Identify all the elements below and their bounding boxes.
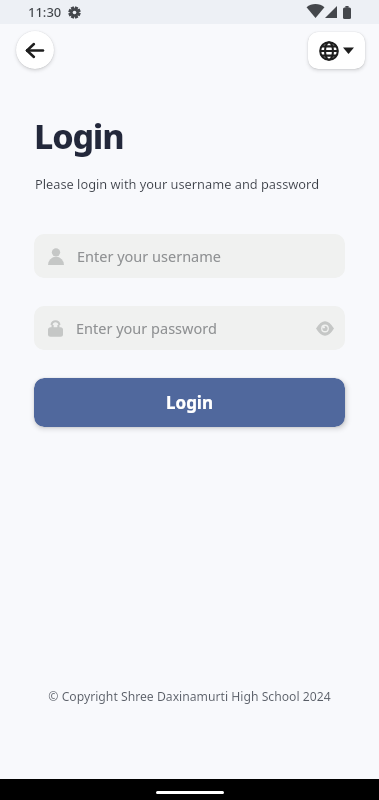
staticText: © Copyright Shree Daxinamurti High Schoo…: [0, 688, 379, 705]
staticText: Login: [34, 113, 124, 159]
button[interactable]: [16, 31, 54, 69]
staticText: Enter your username: [77, 246, 221, 266]
button[interactable]: [308, 32, 365, 69]
staticText: Enter your password: [76, 318, 316, 338]
staticText: 11:30: [28, 3, 62, 21]
button[interactable]: Enter your password: [34, 306, 345, 350]
staticText: Login: [166, 391, 214, 414]
staticText: Please login with your username and pass…: [35, 175, 320, 192]
button[interactable]: Enter your username: [34, 234, 345, 278]
button[interactable]: Login: [34, 378, 345, 427]
